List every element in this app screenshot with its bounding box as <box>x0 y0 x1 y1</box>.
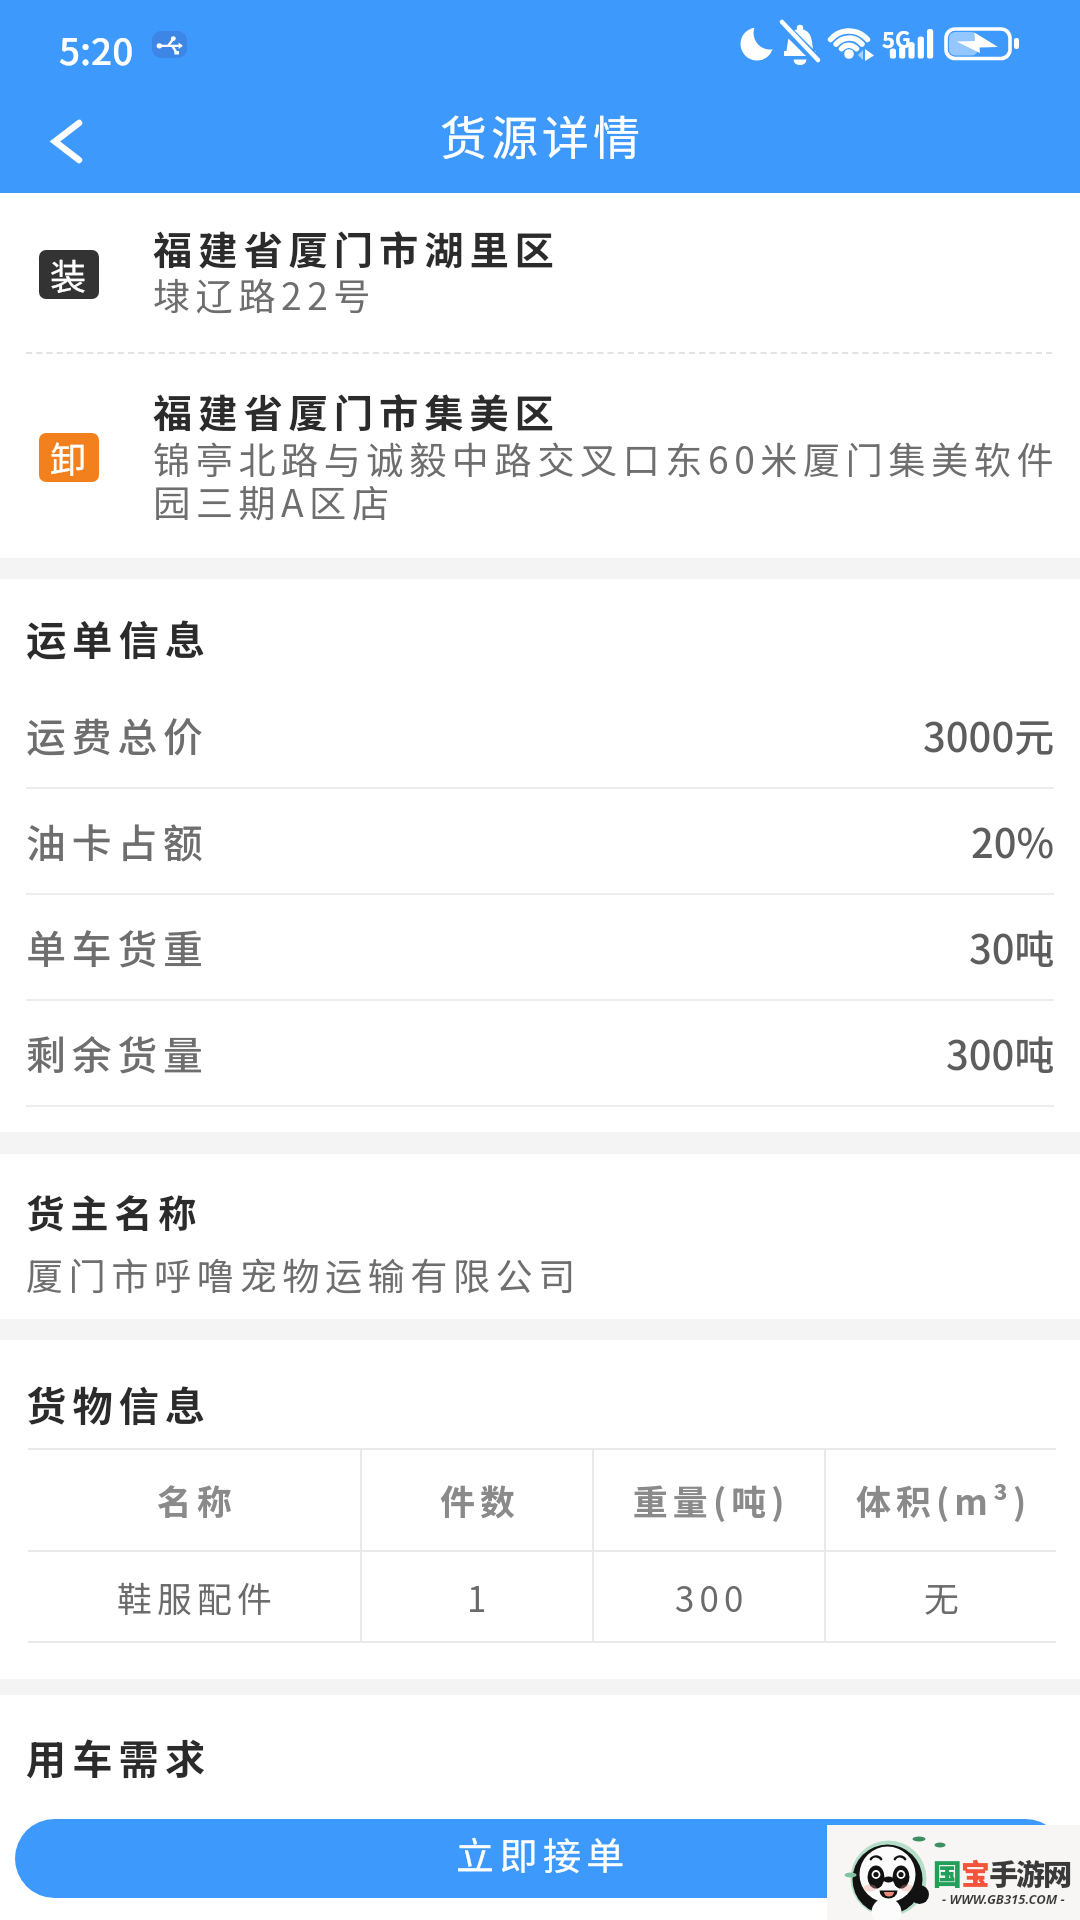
staticText: 运单信息 <box>26 608 212 666</box>
staticText: 手游网 <box>989 1851 1071 1893</box>
staticText: 单车货重 <box>26 918 209 976</box>
staticText: 装 <box>50 250 88 297</box>
staticText: 件数 <box>440 1475 520 1525</box>
staticText: 锦亭北路与诚毅中路交叉口东60米厦门集美软件园三期A区店 <box>153 431 1060 528</box>
button[interactable]: 立即接单 <box>15 1819 1065 1898</box>
staticText: 运费总价 <box>26 706 209 764</box>
staticText: 剩余货量 <box>26 1024 209 1082</box>
staticText: 重量(吨) <box>633 1475 790 1525</box>
staticText: 货物信息 <box>26 1374 212 1432</box>
staticText: 福建省厦门市集美区 <box>153 382 560 439</box>
staticText: 300 <box>675 1572 749 1622</box>
staticText: 货主名称 <box>26 1183 203 1239</box>
staticText: 30吨 <box>969 918 1055 976</box>
staticText: 名称 <box>157 1475 237 1525</box>
staticText: 福建省厦门市湖里区 <box>153 219 560 276</box>
staticText: 用车需求 <box>26 1727 212 1785</box>
staticText: 货源详情 <box>440 101 644 169</box>
staticText: 无 <box>924 1572 964 1622</box>
staticText: 埭辽路22号 <box>153 267 377 321</box>
staticText: - WWW.GB315.COM - <box>942 1890 1065 1908</box>
staticText: 厦门市呼噜宠物运输有限公司 <box>26 1247 581 1301</box>
staticText: 宝 <box>961 1851 989 1893</box>
staticText: 20% <box>971 812 1055 870</box>
staticText: 鞋服配件 <box>117 1572 277 1622</box>
staticText: 1 <box>467 1572 492 1622</box>
staticText: 卸 <box>50 433 88 480</box>
staticText: 立即接单 <box>456 1826 630 1881</box>
button[interactable]: Back <box>24 102 110 180</box>
staticText: 5G <box>882 22 911 54</box>
staticText: 3000元 <box>923 706 1055 764</box>
staticText: 油卡占额 <box>26 812 209 870</box>
staticText: 体积(m³) <box>856 1475 1032 1525</box>
staticText: 300吨 <box>946 1024 1055 1082</box>
staticText: 5:20 <box>59 22 134 76</box>
staticText: 国 <box>933 1851 961 1893</box>
